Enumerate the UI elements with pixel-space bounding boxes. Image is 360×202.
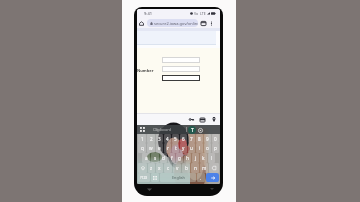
button[interactable]: 3: [156, 134, 163, 143]
button[interactable]: 5: [172, 134, 179, 143]
staticText: k: [202, 155, 205, 161]
button[interactable]: j: [192, 153, 199, 163]
button[interactable]: 0: [212, 134, 219, 143]
staticText: q: [141, 145, 144, 151]
button[interactable]: Payment methods: [200, 117, 205, 122]
staticText: 9:41: [144, 11, 152, 16]
button[interactable]: Passwords: [189, 117, 194, 122]
button[interactable]: Addresses: [211, 117, 216, 122]
staticText: Number: [137, 68, 154, 73]
button[interactable]: Home: [138, 20, 145, 27]
staticText: 4: [166, 136, 169, 142]
staticText: 7: [190, 136, 193, 142]
staticText: m: [202, 165, 207, 171]
button[interactable]: c: [164, 163, 172, 173]
button[interactable]: y: [180, 143, 187, 153]
staticText: l: [211, 155, 213, 161]
button[interactable]: x: [156, 163, 163, 173]
button[interactable]: Settings: [198, 128, 203, 133]
button[interactable]: Keyboard menu: [140, 127, 145, 132]
staticText: 2: [150, 136, 153, 142]
staticText: 0: [214, 136, 217, 142]
button[interactable]: 2: [147, 134, 155, 143]
button[interactable]: g: [176, 153, 183, 163]
button[interactable]: r: [164, 143, 171, 153]
staticText: 6: [182, 136, 185, 142]
button[interactable]: 7: [188, 134, 195, 143]
button[interactable]: z: [148, 163, 155, 173]
button[interactable]: k: [200, 153, 207, 163]
staticText: r: [167, 145, 169, 151]
button[interactable]: b: [182, 163, 190, 173]
button[interactable]: Emoji: [151, 173, 159, 182]
button[interactable]: 1: [138, 134, 146, 143]
button[interactable]: v: [173, 163, 181, 173]
button[interactable]: h: [184, 153, 191, 163]
button[interactable]: 9: [204, 134, 211, 143]
button[interactable]: 6: [180, 134, 187, 143]
button[interactable]: a: [142, 153, 150, 163]
button[interactable]: p: [212, 143, 219, 153]
staticText: d: [162, 155, 165, 161]
button[interactable]: i: [196, 143, 203, 153]
staticText: i: [199, 145, 201, 151]
button[interactable]: w: [147, 143, 155, 153]
staticText: 8: [198, 136, 201, 142]
staticText: b: [185, 165, 188, 171]
button[interactable]: e: [156, 143, 163, 153]
staticText: LTE: [200, 11, 206, 16]
button[interactable]: [162, 66, 200, 72]
staticText: o: [206, 145, 209, 151]
staticText: s: [154, 155, 157, 161]
staticText: c: [167, 165, 170, 171]
staticText: 9: [206, 136, 209, 142]
staticText: 1: [141, 136, 144, 142]
button[interactable]: [162, 57, 200, 63]
button[interactable]: Shift: [138, 163, 147, 173]
staticText: T: [191, 127, 194, 134]
button[interactable]: .: [197, 173, 205, 182]
button[interactable]: d: [160, 153, 167, 163]
button[interactable]: n: [191, 163, 199, 173]
staticText: n: [194, 165, 197, 171]
button[interactable]: o: [204, 143, 211, 153]
button[interactable]: secure2.iowa.gov/online: [147, 19, 198, 27]
button[interactable]: l: [208, 153, 215, 163]
button[interactable]: q: [138, 143, 146, 153]
button[interactable]: [162, 75, 200, 81]
staticText: h: [186, 155, 189, 161]
button[interactable]: More options: [208, 20, 214, 26]
staticText: English: [172, 175, 185, 180]
button[interactable]: 8: [196, 134, 203, 143]
staticText: j: [195, 155, 197, 161]
button[interactable]: Tabs: [200, 20, 206, 26]
staticText: 5: [174, 136, 177, 142]
button[interactable]: s: [151, 153, 159, 163]
button[interactable]: Theme: [188, 126, 196, 134]
staticText: z: [150, 165, 153, 171]
staticText: Clipboard: [153, 127, 172, 132]
button[interactable]: m: [200, 163, 208, 173]
staticText: .: [200, 175, 202, 181]
staticText: f: [171, 155, 173, 161]
button[interactable]: f: [168, 153, 175, 163]
staticText: p: [214, 145, 217, 151]
staticText: 3: [158, 136, 161, 142]
button[interactable]: English: [160, 173, 196, 182]
button[interactable]: t: [172, 143, 179, 153]
staticText: Vo: [194, 11, 199, 16]
staticText: secure2.iowa.gov/online: [154, 21, 198, 26]
staticText: e: [158, 145, 161, 151]
button[interactable]: 4: [164, 134, 171, 143]
staticText: x: [158, 165, 161, 171]
staticText: a: [145, 155, 148, 161]
button[interactable]: Enter: [206, 173, 219, 182]
staticText: ?123: [140, 175, 148, 180]
staticText: u: [190, 145, 193, 151]
staticText: v: [176, 165, 179, 171]
button[interactable]: Backspace: [209, 163, 219, 173]
staticText: y: [182, 145, 185, 151]
button[interactable]: u: [188, 143, 195, 153]
button[interactable]: ?123: [138, 173, 150, 182]
staticText: g: [178, 155, 181, 161]
